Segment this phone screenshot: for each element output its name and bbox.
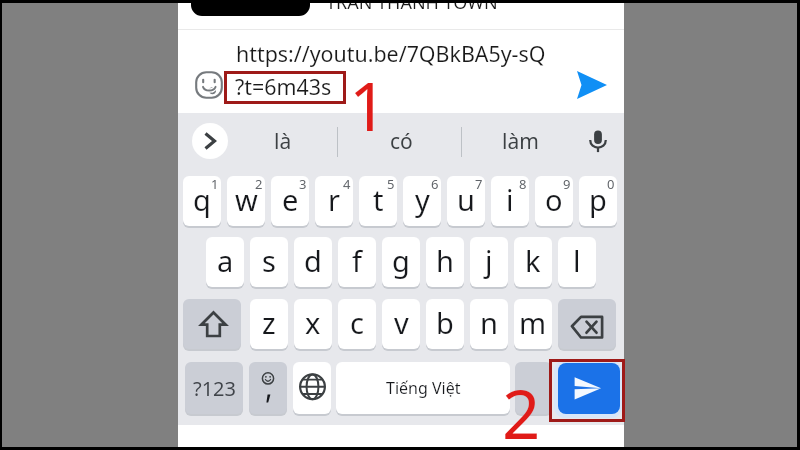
button[interactable]: o bbox=[535, 176, 573, 226]
staticText: 3 bbox=[299, 176, 307, 193]
staticText: 0 bbox=[607, 176, 615, 193]
staticText: có bbox=[390, 127, 413, 156]
staticText: 5 bbox=[387, 176, 395, 193]
staticText: ?123 bbox=[193, 375, 236, 402]
button[interactable]: v bbox=[382, 299, 420, 349]
button[interactable]: có bbox=[361, 113, 441, 169]
button[interactable]: h bbox=[426, 237, 464, 287]
staticText: c bbox=[350, 303, 364, 342]
staticText: h bbox=[436, 241, 454, 280]
staticText: l bbox=[573, 241, 581, 280]
button[interactable]: n bbox=[470, 299, 508, 349]
button[interactable]: Backspace bbox=[558, 299, 616, 349]
staticText: u bbox=[457, 180, 475, 219]
staticText: z bbox=[262, 303, 276, 342]
button[interactable]: làm bbox=[480, 113, 560, 169]
staticText: Tiếng Việt bbox=[386, 377, 461, 399]
button[interactable]: Emoji bbox=[249, 362, 287, 414]
staticText: i bbox=[506, 180, 514, 219]
button[interactable]: b bbox=[426, 299, 464, 349]
button[interactable]: a bbox=[206, 237, 244, 287]
staticText: p bbox=[589, 180, 607, 219]
button[interactable]: e bbox=[271, 176, 309, 226]
staticText: v bbox=[394, 303, 409, 342]
staticText: làm bbox=[502, 127, 539, 156]
button[interactable]: p bbox=[579, 176, 617, 226]
staticText: 7 bbox=[475, 176, 483, 193]
staticText: m bbox=[519, 303, 547, 342]
staticText: o bbox=[545, 180, 563, 219]
button[interactable]: s bbox=[250, 237, 288, 287]
staticText: t bbox=[373, 180, 384, 219]
staticText: TRAN THANH TOWN bbox=[326, 0, 498, 15]
button[interactable]: f bbox=[338, 237, 376, 287]
staticText: 6 bbox=[431, 176, 439, 193]
staticText: b bbox=[436, 303, 454, 342]
button[interactable]: x bbox=[294, 299, 332, 349]
button[interactable]: Send message bbox=[558, 363, 620, 414]
staticText: e bbox=[282, 180, 299, 219]
button[interactable]: Shift bbox=[183, 299, 241, 349]
staticText: f bbox=[352, 241, 362, 280]
button[interactable]: c bbox=[338, 299, 376, 349]
staticText: https://youtu.be/7QBkBA5y-sQ bbox=[236, 39, 546, 68]
staticText: là bbox=[274, 127, 292, 156]
button[interactable]: ?123 bbox=[185, 362, 243, 414]
button[interactable]: là bbox=[243, 113, 323, 169]
staticText: 4 bbox=[343, 176, 351, 193]
staticText: w bbox=[235, 180, 258, 219]
button[interactable]: u bbox=[447, 176, 485, 226]
button[interactable]: l bbox=[558, 237, 596, 287]
staticText: n bbox=[480, 303, 498, 342]
staticText: ?t=6m43s bbox=[235, 72, 332, 101]
button[interactable]: Send bbox=[577, 71, 607, 99]
staticText: 8 bbox=[519, 176, 527, 193]
staticText: 2 bbox=[255, 176, 263, 193]
button[interactable]: Voice input bbox=[583, 126, 613, 156]
staticText: s bbox=[262, 241, 276, 280]
button[interactable]: Period bbox=[515, 362, 552, 414]
button[interactable]: t bbox=[359, 176, 397, 226]
button[interactable]: z bbox=[250, 299, 288, 349]
button[interactable]: Change language bbox=[293, 362, 331, 414]
staticText: 2 bbox=[502, 367, 541, 450]
staticText: y bbox=[415, 180, 430, 219]
staticText: d bbox=[304, 241, 322, 280]
button[interactable]: Tiếng Việt bbox=[336, 362, 510, 414]
button[interactable]: y bbox=[403, 176, 441, 226]
staticText: q bbox=[193, 180, 211, 219]
button[interactable]: q bbox=[183, 176, 221, 226]
button[interactable]: i bbox=[491, 176, 529, 226]
staticText: k bbox=[525, 241, 541, 280]
button[interactable]: g bbox=[382, 237, 420, 287]
button[interactable]: j bbox=[470, 237, 508, 287]
button[interactable]: More suggestions bbox=[192, 123, 228, 159]
button[interactable]: m bbox=[514, 299, 552, 349]
staticText: x bbox=[305, 303, 321, 342]
staticText: 1 bbox=[211, 176, 219, 193]
button[interactable]: w bbox=[227, 176, 265, 226]
staticText: g bbox=[392, 241, 410, 280]
staticText: 9 bbox=[563, 176, 571, 193]
button[interactable]: r bbox=[315, 176, 353, 226]
button[interactable]: d bbox=[294, 237, 332, 287]
button[interactable]: k bbox=[514, 237, 552, 287]
staticText: 1 bbox=[349, 59, 388, 150]
staticText: j bbox=[485, 241, 493, 280]
staticText: r bbox=[328, 180, 340, 219]
staticText: a bbox=[217, 241, 234, 280]
